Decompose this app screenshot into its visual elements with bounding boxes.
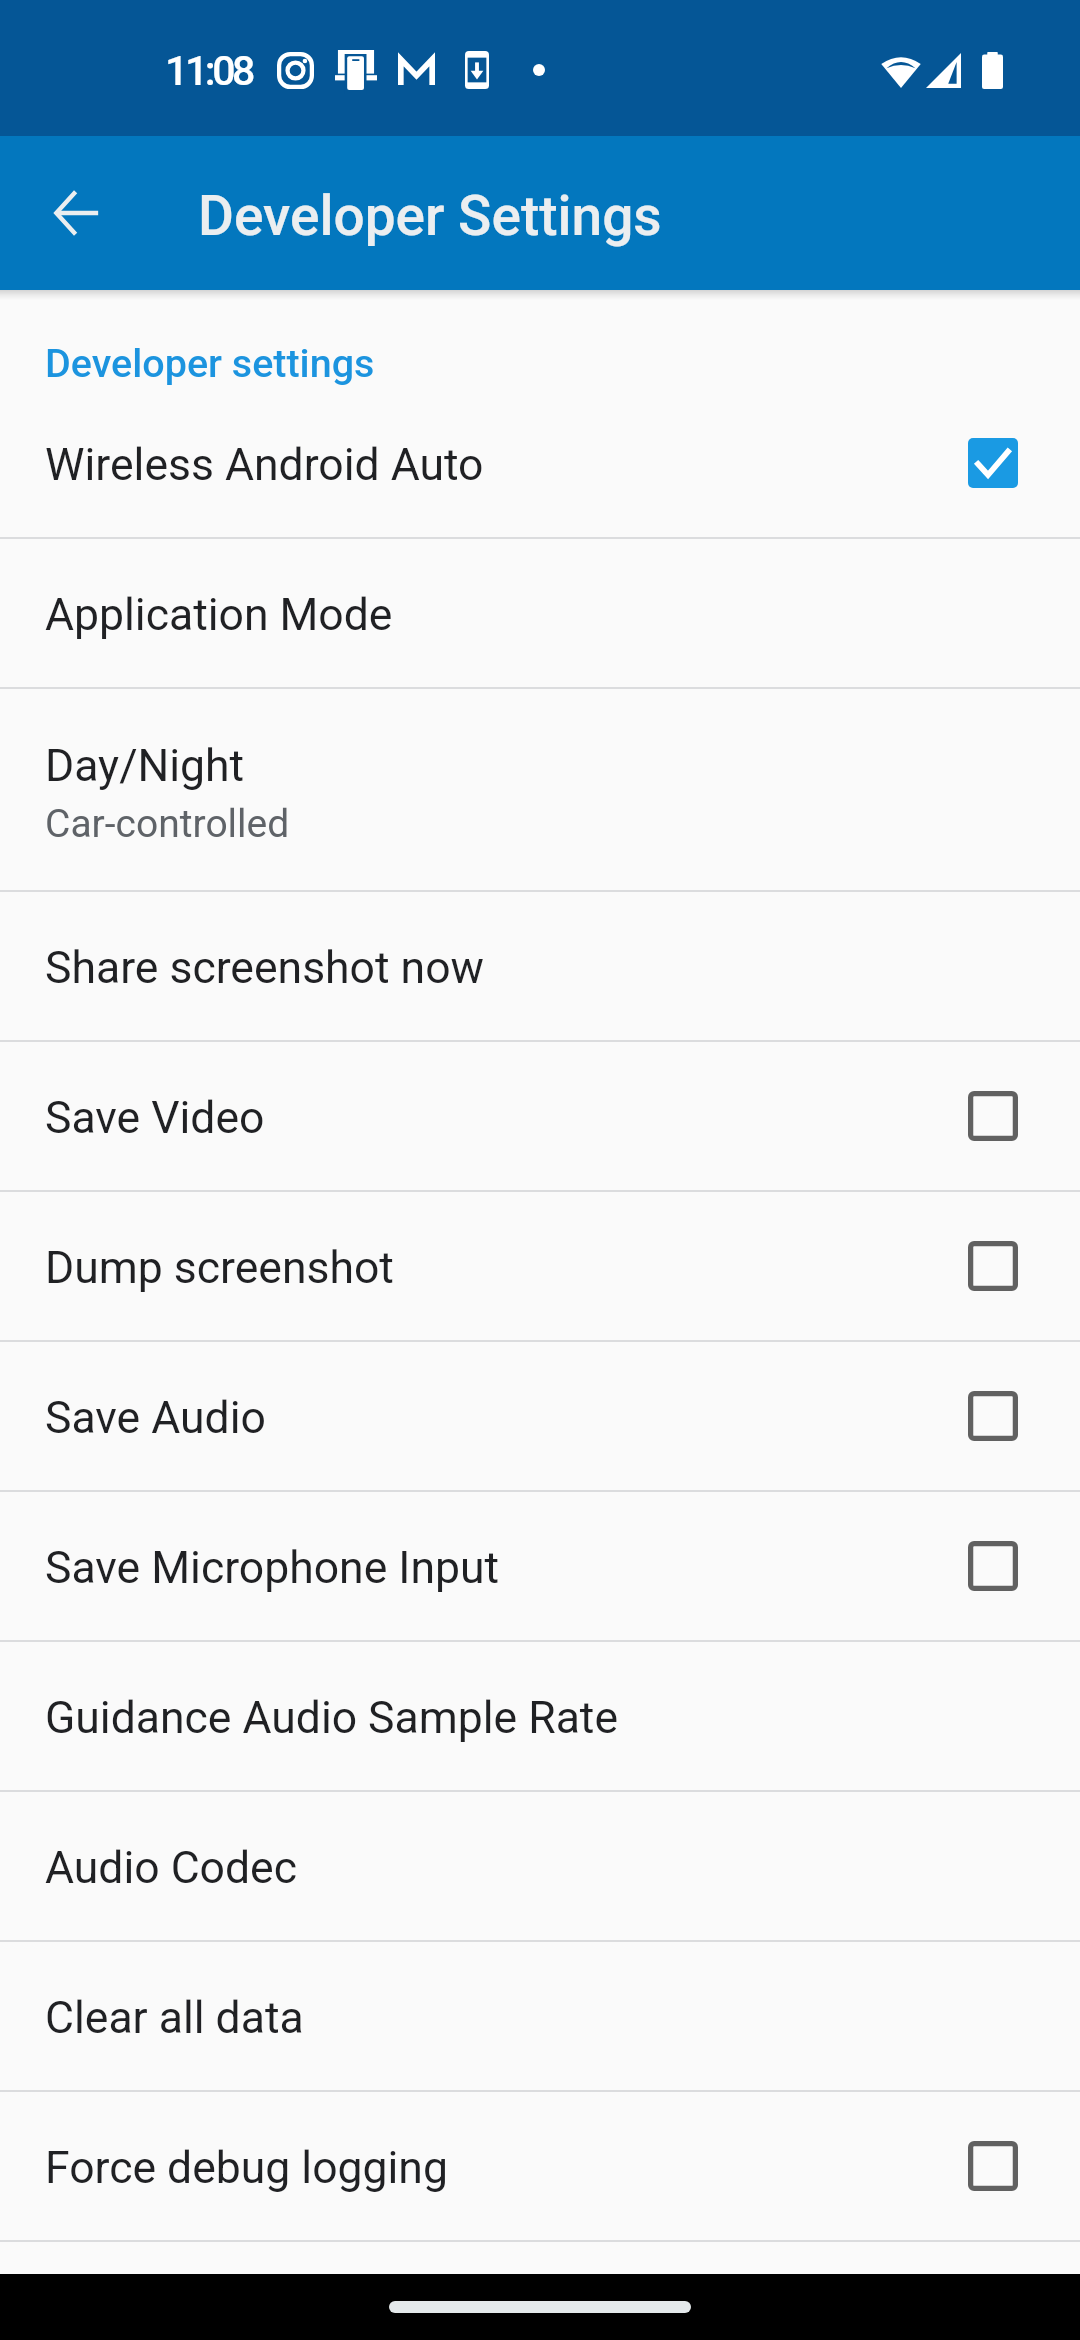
staticText: Save Microphone Input [45,1542,500,1594]
button[interactable]: Day/Night [0,689,1080,890]
staticText: 11:08 [165,47,253,95]
button[interactable]: Save Video [0,1042,1080,1190]
button[interactable]: Audio Codec [0,1792,1080,1940]
button[interactable]: Back [33,169,121,257]
button[interactable]: Save Video checkbox [943,1066,1043,1166]
button[interactable]: Dump screenshot checkbox [943,1216,1043,1316]
button[interactable]: Wireless Android Auto checkbox [943,413,1043,513]
button[interactable]: Clear all data [0,1942,1080,2090]
staticText: Dump screenshot [45,1242,394,1294]
button[interactable]: Wireless Android Auto [0,389,1080,537]
button[interactable]: Force debug logging checkbox [943,2116,1043,2216]
staticText: Developer settings [45,340,375,386]
button[interactable]: Save Microphone Input checkbox [943,1516,1043,1616]
staticText: Force debug logging [45,2142,448,2194]
staticText: Clear all data [45,1992,304,2044]
staticText: Car-controlled [45,801,290,847]
staticText: Application Mode [45,589,393,641]
staticText: Developer Settings [198,184,662,248]
button[interactable]: Guidance Audio Sample Rate [0,1642,1080,1790]
staticText: Wireless Android Auto [45,439,484,491]
button[interactable]: Save Audio checkbox [943,1366,1043,1466]
button[interactable]: Share screenshot now [0,892,1080,1040]
staticText: Day/Night [45,740,245,792]
button[interactable]: Save Microphone Input [0,1492,1080,1640]
staticText: Save Audio [45,1392,266,1444]
button[interactable]: Save Audio [0,1342,1080,1490]
staticText: Guidance Audio Sample Rate [45,1692,619,1744]
staticText: Save Video [45,1092,265,1144]
button[interactable]: Application Mode [0,539,1080,687]
staticText: Share screenshot now [45,942,484,994]
button[interactable]: Dump screenshot [0,1192,1080,1340]
staticText: Audio Codec [45,1842,297,1894]
button[interactable]: Force debug logging [0,2092,1080,2240]
